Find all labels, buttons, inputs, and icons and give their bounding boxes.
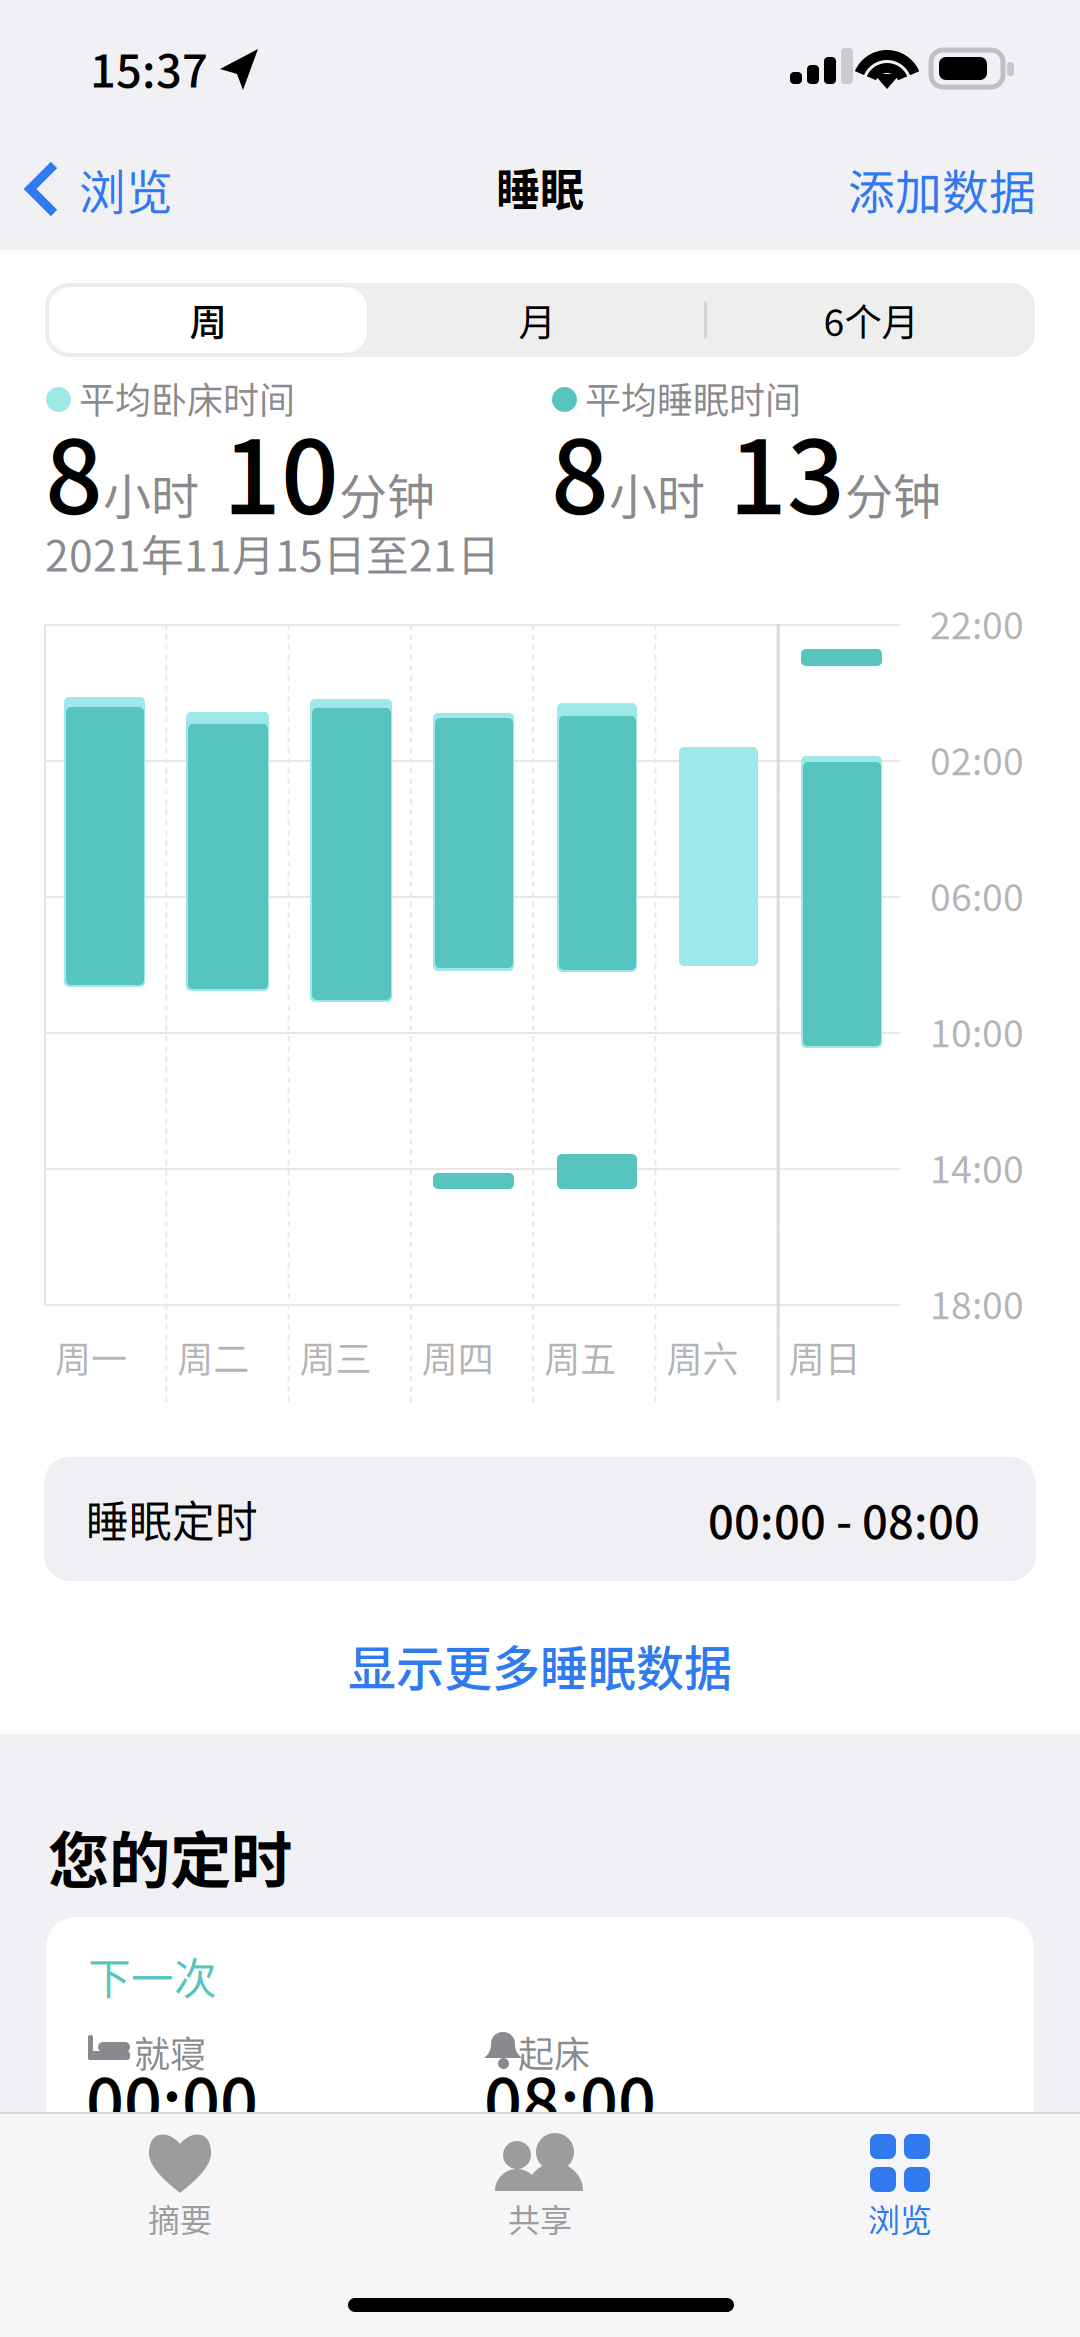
staticText: 周六 — [666, 1331, 738, 1383]
staticText: 分钟 — [845, 458, 941, 528]
staticText: 显示更多睡眠数据 — [348, 1630, 732, 1700]
staticText: 周三 — [300, 1331, 372, 1383]
staticText: 小时 — [103, 458, 199, 528]
staticText: 睡眠定时 — [86, 1488, 258, 1550]
button[interactable]: 6个月 — [706, 283, 1036, 357]
staticText: 您的定时 — [48, 1812, 292, 1901]
staticText: 小时 — [609, 458, 705, 528]
staticText: 添加数据 — [848, 155, 1036, 223]
button[interactable]: 周 — [49, 283, 367, 357]
button[interactable]: 显示更多睡眠数据 — [0, 1622, 1080, 1708]
staticText: 14:00 — [930, 1140, 1024, 1194]
staticText: 02:00 — [930, 732, 1024, 786]
button[interactable]: 添加数据 — [776, 134, 1036, 244]
staticText: 浏览 — [79, 155, 173, 223]
staticText: 6个月 — [823, 293, 918, 347]
staticText: 15:37 — [90, 35, 208, 101]
staticText: 10:00 — [930, 1004, 1024, 1058]
button[interactable]: 睡眠定时 — [44, 1457, 1036, 1581]
staticText: 摘要 — [148, 2195, 212, 2241]
staticText: 8 — [551, 397, 609, 543]
button[interactable]: 月 — [372, 283, 702, 357]
staticText: 平均卧床时间 — [79, 372, 295, 424]
staticText: 00:00 - 08:00 — [708, 1486, 980, 1552]
staticText: 8 — [45, 397, 103, 543]
staticText: 起床 — [518, 2026, 590, 2078]
staticText: 下一次 — [88, 1945, 217, 2007]
staticText: 周一 — [55, 1331, 127, 1383]
staticText: 浏览 — [868, 2195, 932, 2241]
button[interactable]: 浏览 — [0, 134, 270, 244]
staticText: 10 — [223, 397, 339, 543]
button[interactable]: 共享 — [360, 2124, 720, 2248]
staticText: 08:00 — [484, 2050, 656, 2146]
staticText: 分钟 — [339, 458, 435, 528]
staticText: 22:00 — [930, 596, 1024, 650]
button[interactable]: 摘要 — [0, 2124, 360, 2248]
staticText: 睡眠 — [496, 155, 584, 219]
staticText: 就寝 — [134, 2026, 206, 2078]
button[interactable]: 浏览 — [720, 2124, 1080, 2248]
staticText: 周二 — [177, 1331, 249, 1383]
staticText: 2021年11月15日至21日 — [45, 522, 500, 584]
staticText: 周五 — [544, 1331, 616, 1383]
staticText: 周 — [189, 293, 226, 347]
staticText: 平均睡眠时间 — [585, 372, 801, 424]
staticText: 周日 — [789, 1331, 861, 1383]
staticText: 00:00 — [86, 2050, 258, 2146]
staticText: 06:00 — [930, 868, 1024, 922]
staticText: 周四 — [422, 1331, 494, 1383]
staticText: 月 — [518, 293, 555, 347]
staticText: 13 — [729, 397, 845, 543]
staticText: 共享 — [508, 2195, 572, 2241]
staticText: 18:00 — [930, 1276, 1024, 1330]
